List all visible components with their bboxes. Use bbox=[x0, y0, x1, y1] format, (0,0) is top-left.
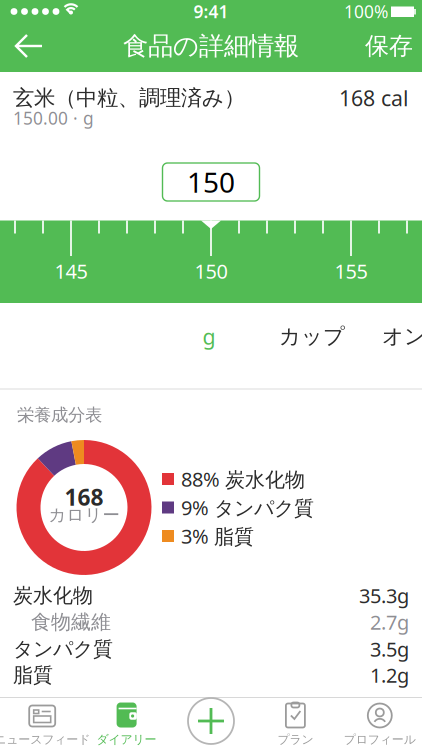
button[interactable]: g bbox=[179, 316, 239, 356]
staticText: 9% タンパク質 bbox=[181, 494, 314, 521]
staticText: 88% 炭水化物 bbox=[181, 466, 305, 492]
staticText: タンパク質 bbox=[13, 637, 113, 661]
staticText: 150 bbox=[187, 163, 235, 201]
staticText: 炭水化物 bbox=[13, 583, 93, 608]
button[interactable]: ダイアリー bbox=[85, 697, 169, 750]
staticText: 150.00 · g bbox=[13, 106, 94, 129]
staticText: 玄米（中粒、調理済み） bbox=[13, 85, 245, 111]
staticText: 168 cal bbox=[339, 84, 409, 112]
staticText: ニュースフィード bbox=[0, 732, 90, 747]
staticText: 2.7g bbox=[370, 609, 409, 635]
button[interactable]: Back bbox=[6, 24, 50, 68]
staticText: 食物繊維 bbox=[31, 610, 111, 634]
staticText: 150 bbox=[194, 258, 227, 284]
button[interactable]: プロフィール bbox=[338, 697, 422, 750]
staticText: 155 bbox=[334, 258, 367, 284]
button[interactable]: プラン bbox=[253, 697, 337, 750]
staticText: 145 bbox=[54, 258, 87, 284]
button[interactable]: 保存 bbox=[359, 24, 419, 68]
staticText: 食品の詳細情報 bbox=[123, 30, 299, 61]
staticText: 168 bbox=[64, 482, 103, 512]
staticText: 保存 bbox=[365, 31, 413, 61]
staticText: 100% bbox=[344, 0, 388, 23]
staticText: 3.5g bbox=[370, 636, 409, 662]
staticText: 脂質 bbox=[13, 663, 53, 687]
button[interactable]: Add bbox=[187, 697, 234, 744]
staticText: プラン bbox=[277, 732, 313, 747]
button[interactable]: オンス bbox=[380, 316, 422, 356]
staticText: カップ bbox=[279, 323, 345, 350]
staticText: 1.2g bbox=[370, 662, 409, 688]
staticText: カロリー bbox=[48, 504, 119, 526]
staticText: 3% 脂質 bbox=[181, 523, 254, 549]
staticText: プロフィール bbox=[344, 732, 416, 747]
staticText: g bbox=[202, 322, 215, 351]
staticText: 栄養成分表 bbox=[17, 404, 102, 426]
button[interactable]: カップ bbox=[277, 316, 347, 356]
staticText: ダイアリー bbox=[97, 732, 157, 747]
staticText: 35.3g bbox=[359, 582, 409, 609]
staticText: オンス bbox=[382, 323, 422, 350]
staticText: 9:41 bbox=[193, 0, 228, 23]
button[interactable]: ニュースフィード bbox=[0, 697, 90, 750]
